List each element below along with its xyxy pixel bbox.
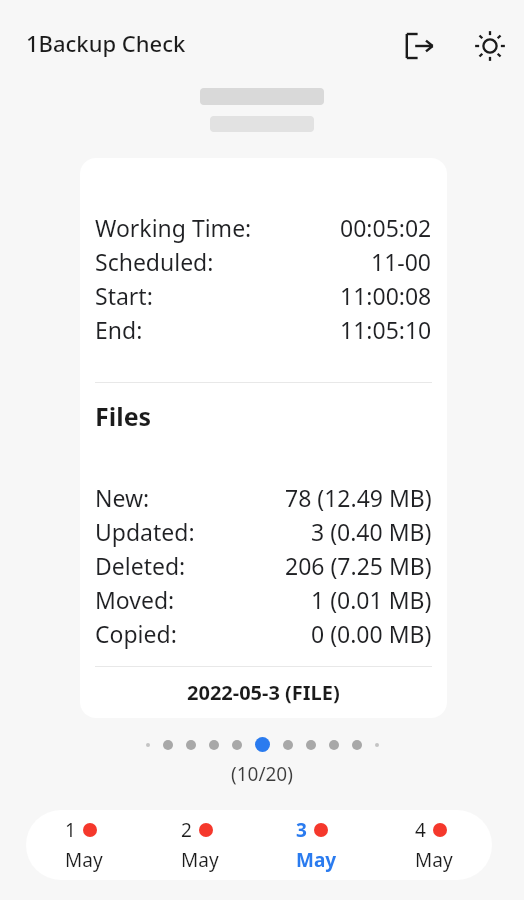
staticText: 3 (0.40 MB) (311, 516, 432, 547)
staticText: Scheduled: (95, 246, 214, 277)
button[interactable]: 1Backup Check (24, 26, 188, 60)
staticText: May (415, 847, 453, 873)
staticText: Moved: (95, 584, 175, 615)
staticText: Copied: (95, 618, 177, 649)
button[interactable]: 2 (142, 810, 258, 880)
button[interactable]: Brightness (466, 22, 514, 70)
staticText: 11:05:10 (340, 314, 432, 345)
staticText: 206 (7.25 MB) (285, 550, 432, 581)
button[interactable]: 1 (26, 810, 142, 880)
staticText: 2022-05-3 (FILE) (187, 679, 340, 706)
staticText: 0 (0.00 MB) (311, 618, 432, 649)
staticText: 3 (296, 817, 307, 843)
staticText: End: (95, 314, 143, 345)
staticText: Deleted: (95, 550, 186, 581)
staticText: 1 (0.01 MB) (311, 584, 432, 615)
button[interactable]: Working Time: (80, 158, 447, 718)
button[interactable]: 3 (258, 810, 375, 880)
staticText: Updated: (95, 516, 195, 547)
staticText: (10/20) (231, 761, 293, 787)
staticText: Working Time: (95, 212, 252, 243)
staticText: 11:00:08 (340, 280, 432, 311)
staticText: 78 (12.49 MB) (285, 482, 432, 513)
staticText: Files (95, 399, 152, 433)
staticText: 1 (65, 817, 76, 843)
staticText: 4 (415, 817, 426, 843)
staticText: May (296, 847, 337, 873)
staticText: 2 (181, 817, 192, 843)
staticText: Start: (95, 280, 153, 311)
button[interactable]: 4 (375, 810, 492, 880)
staticText: 00:05:02 (340, 212, 432, 243)
staticText: 11-00 (371, 246, 432, 277)
staticText: New: (95, 482, 150, 513)
button[interactable]: Log out (396, 22, 444, 70)
staticText: May (65, 847, 103, 873)
staticText: 1Backup Check (26, 28, 186, 58)
staticText: May (181, 847, 219, 873)
